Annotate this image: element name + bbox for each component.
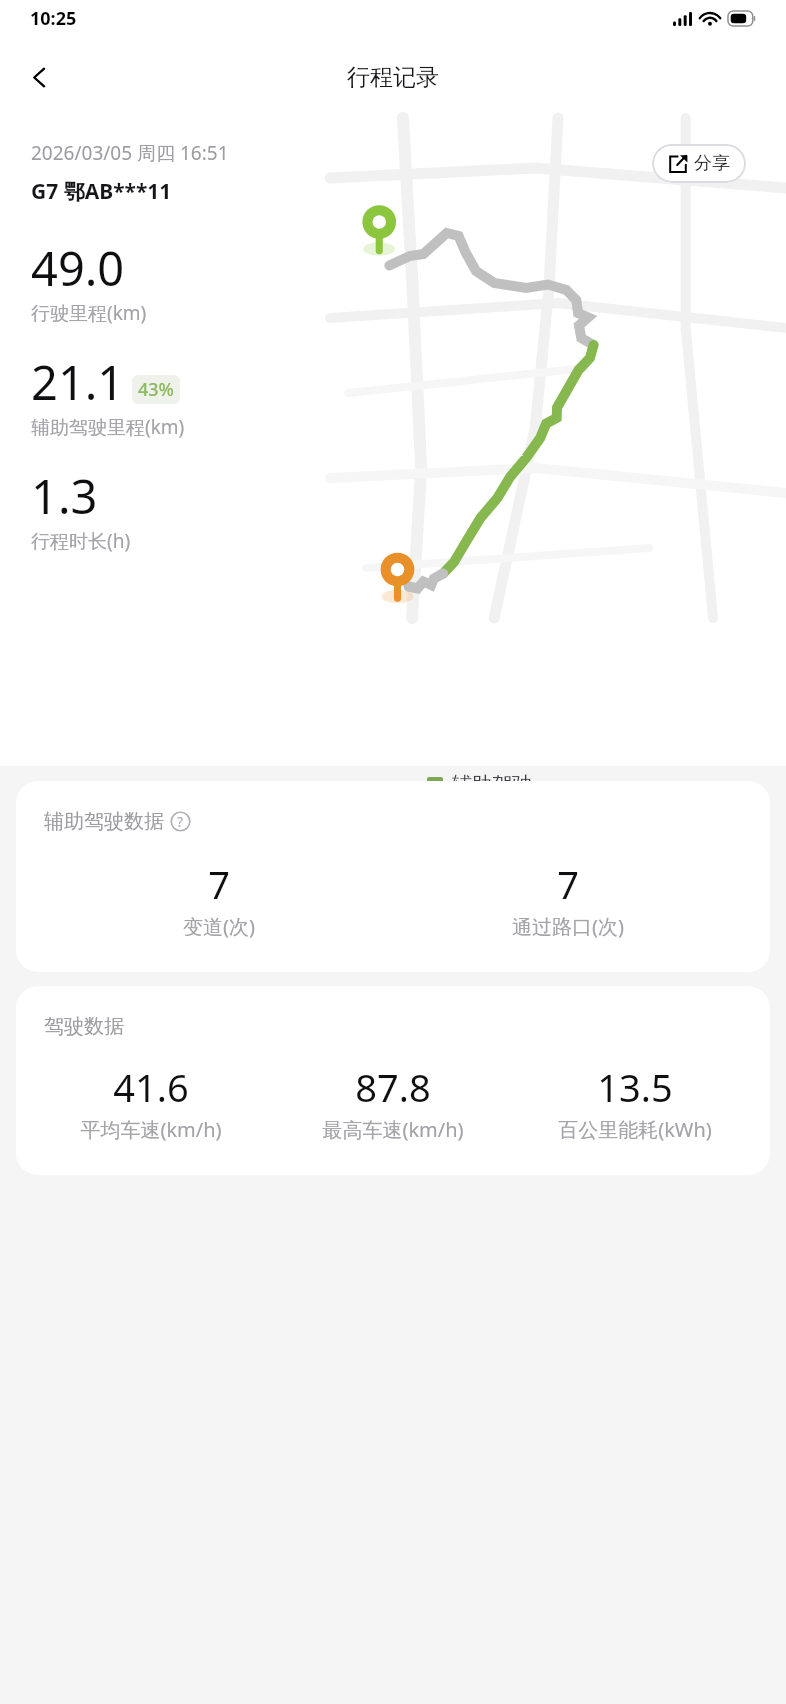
staticText: 辅助驾驶里程(km)	[31, 414, 185, 440]
staticText: 43%	[138, 377, 174, 402]
button[interactable]: Back	[16, 54, 62, 100]
button[interactable]: Help	[170, 811, 191, 832]
button[interactable]: 辅助驾驶数据	[16, 781, 770, 972]
staticText: 10:25	[30, 6, 77, 31]
staticText: 2026/03/05 周四 16:51	[31, 140, 229, 166]
staticText: 7	[557, 858, 579, 910]
staticText: 行程时长(h)	[31, 528, 131, 554]
staticText: 1.3	[31, 464, 98, 528]
staticText: 通过路口(次)	[512, 913, 624, 940]
staticText: 辅助驾驶	[452, 772, 532, 797]
staticText: 41.6	[113, 1061, 189, 1113]
staticText: 行程记录	[347, 63, 439, 92]
staticText: 辅助驾驶数据	[44, 809, 164, 834]
staticText: 驾驶数据	[44, 1014, 124, 1039]
staticText: 7	[208, 858, 230, 910]
staticText: 87.8	[355, 1061, 431, 1113]
staticText: 变道(次)	[183, 913, 255, 940]
staticText: 湖北省武汉市蔡甸区军山街道汉南大道	[104, 891, 461, 917]
button[interactable]: 驾驶数据	[16, 986, 770, 1175]
staticText: 49.0	[31, 236, 125, 300]
staticText: 13.5	[597, 1061, 673, 1113]
staticText: 平均车速(km/h)	[80, 1116, 222, 1143]
staticText: ?	[177, 812, 184, 831]
staticText: 最高车速(km/h)	[322, 1116, 464, 1143]
staticText: G7 鄂AB***11	[31, 177, 172, 206]
staticText: 21.1	[31, 350, 125, 414]
button[interactable]: 分享	[652, 144, 746, 183]
staticText: 分享	[694, 152, 730, 175]
staticText: 百公里能耗(kWh)	[558, 1116, 712, 1143]
staticText: 行驶里程(km)	[31, 300, 147, 326]
